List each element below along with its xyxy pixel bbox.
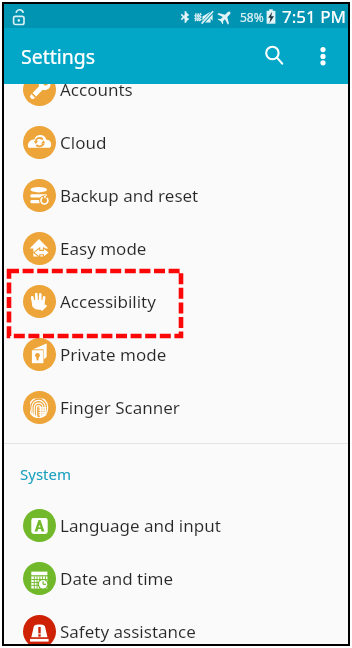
staticText: Cloud bbox=[60, 131, 107, 154]
staticText: Safety assistance bbox=[60, 620, 196, 643]
button[interactable]: Private mode bbox=[4, 328, 348, 381]
staticText: Finger Scanner bbox=[60, 396, 180, 419]
staticText: System bbox=[20, 464, 71, 484]
staticText: Backup and reset bbox=[60, 184, 199, 207]
button[interactable]: Language and input bbox=[4, 499, 348, 552]
staticText: Language and input bbox=[60, 514, 221, 537]
staticText: 7:51 PM bbox=[282, 5, 346, 28]
staticText: Settings bbox=[21, 43, 96, 70]
button[interactable]: Accounts bbox=[4, 63, 348, 116]
button[interactable]: Finger Scanner bbox=[4, 381, 348, 434]
staticText: 58% bbox=[240, 9, 264, 25]
staticText: Accounts bbox=[60, 78, 133, 101]
button[interactable]: Date and time bbox=[4, 552, 348, 605]
button[interactable]: Cloud bbox=[4, 116, 348, 169]
button[interactable]: Backup and reset bbox=[4, 169, 348, 222]
button[interactable]: Accessibility bbox=[4, 275, 348, 328]
button[interactable]: Easy mode bbox=[4, 222, 348, 275]
staticText: Easy mode bbox=[60, 237, 147, 260]
staticText: Private mode bbox=[60, 343, 167, 366]
staticText: Date and time bbox=[60, 567, 174, 590]
button[interactable]: Safety assistance bbox=[4, 605, 348, 644]
button[interactable]: More options bbox=[302, 35, 344, 77]
button[interactable]: Search bbox=[252, 33, 298, 79]
staticText: Accessibility bbox=[60, 290, 156, 313]
